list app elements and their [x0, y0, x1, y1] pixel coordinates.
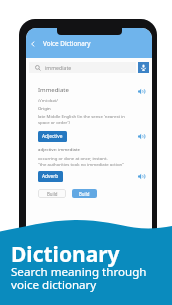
staticText: Origin — [38, 105, 51, 111]
staticText: Build — [79, 191, 90, 197]
staticText: Adverb — [42, 173, 59, 180]
button[interactable]: Play pronunciation — [136, 86, 147, 97]
staticText: late Middle English (in the sense 'neare… — [38, 113, 125, 125]
button[interactable]: Back — [27, 37, 91, 49]
button[interactable]: Build — [38, 189, 66, 198]
staticText: Immediate — [38, 86, 69, 94]
staticText: adjective: immediate — [38, 146, 80, 152]
button[interactable]: Build — [72, 189, 97, 198]
staticText: occurring or done at once; instant. "the… — [38, 155, 124, 167]
staticText: Build — [47, 191, 58, 197]
button[interactable]: Play pronunciation — [136, 171, 147, 182]
button[interactable]: Adverb — [38, 171, 63, 182]
other: Back — [27, 38, 38, 49]
staticText: immediate — [45, 64, 72, 71]
staticText: Search meaning through voice dictionary — [11, 264, 147, 293]
staticText: Adjective — [42, 133, 63, 140]
button[interactable]: Voice search — [138, 62, 149, 73]
button[interactable]: Adjective — [38, 131, 67, 142]
staticText: Voice Dictionary — [43, 39, 91, 48]
staticText: Dictionary — [11, 240, 120, 269]
button[interactable]: immediate — [29, 62, 136, 73]
staticText: /ɪˈmiːdɪət/ — [38, 97, 58, 103]
button[interactable]: Play pronunciation — [136, 131, 147, 142]
